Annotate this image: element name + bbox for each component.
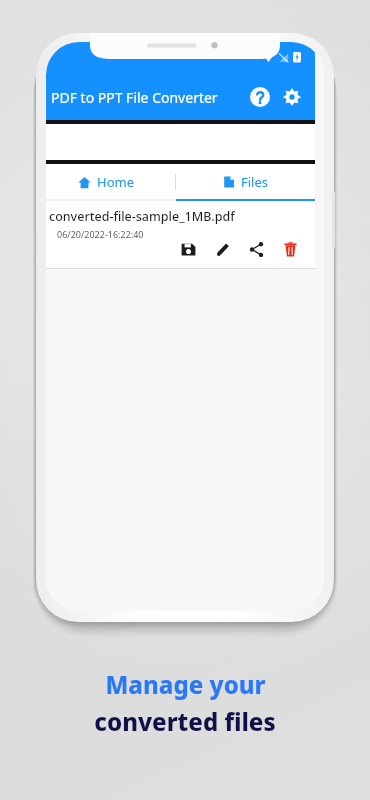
staticText: 06/20/2022-16:22:40 [57,228,144,240]
button[interactable]: Settings [279,84,305,110]
staticText: Manage your [105,668,266,701]
button[interactable]: Help [247,84,273,110]
staticText: converted files [94,705,276,738]
staticText: PDF to PPT File Converter [51,88,218,107]
button[interactable]: Share [243,236,269,262]
button[interactable]: Delete [277,236,303,262]
button[interactable]: Home [46,164,175,199]
staticText: converted-file-sample_1MB.pdf [49,208,235,225]
button[interactable]: Save [175,236,201,262]
button[interactable]: converted-file-sample_1MB.pdf [46,201,315,269]
staticText: Home [97,173,134,191]
button[interactable]: Rename [209,236,235,262]
staticText: Files [241,173,269,191]
button[interactable]: Files [176,164,315,199]
